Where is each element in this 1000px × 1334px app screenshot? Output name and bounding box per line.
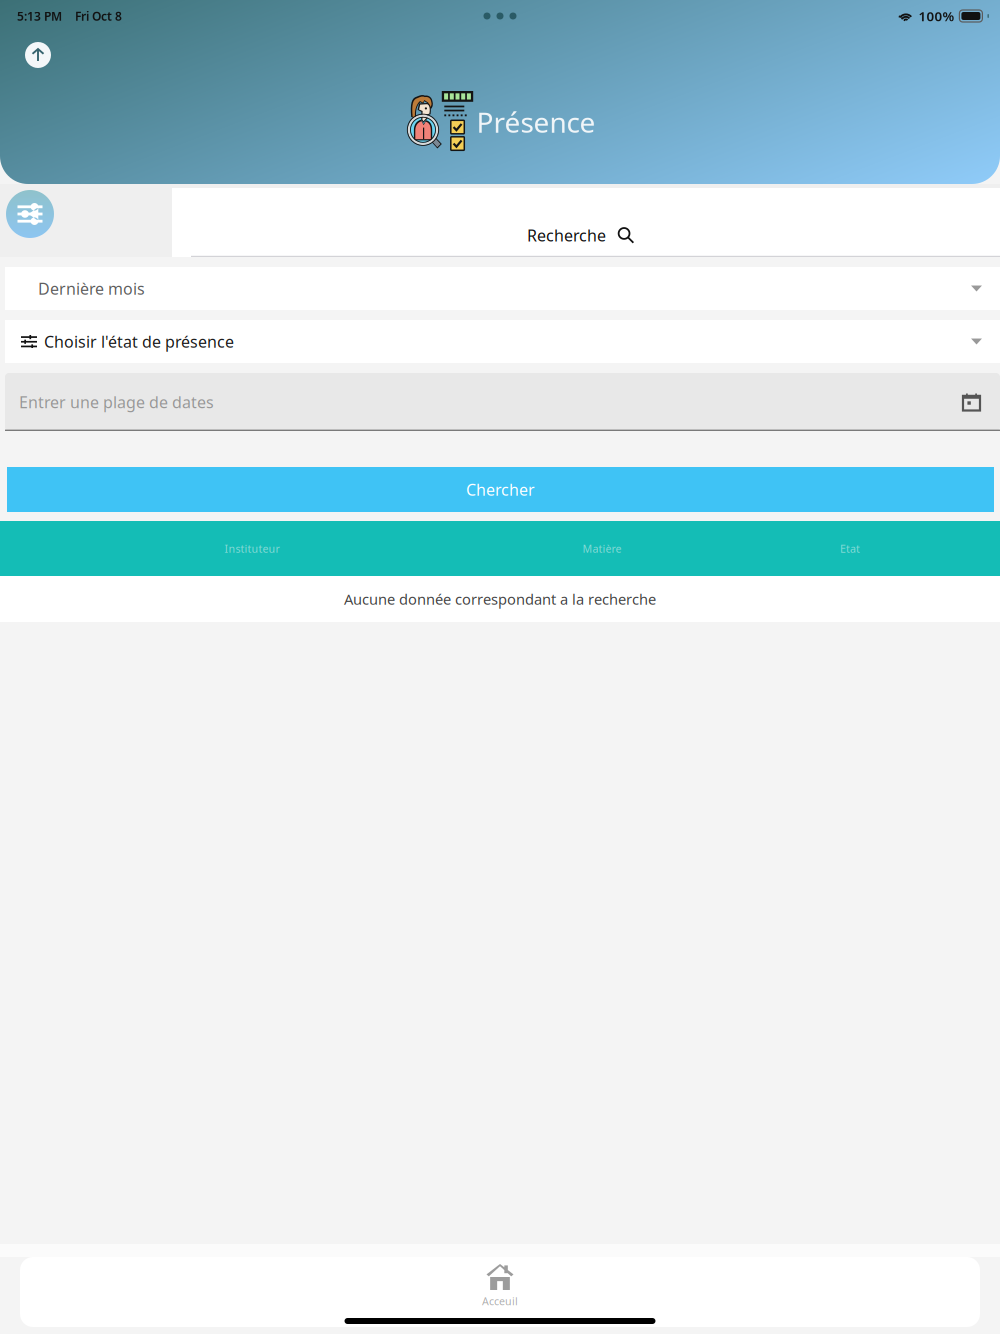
staticText: Instituteur: [224, 541, 279, 556]
button[interactable]: Choisir l'état de présence: [5, 320, 1000, 363]
button[interactable]: Back: [25, 42, 51, 68]
staticText: Etat: [840, 541, 860, 556]
staticText: Recherche: [527, 225, 606, 246]
staticText: Choisir l'état de présence: [44, 331, 234, 352]
staticText: 100%: [918, 7, 954, 25]
staticText: Chercher: [466, 479, 535, 500]
staticText: 5:13 PM: [17, 8, 62, 24]
staticText: Acceuil: [482, 1294, 518, 1308]
button[interactable]: Recherche: [172, 188, 1000, 257]
staticText: Aucune donnée correspondant a la recherc…: [344, 589, 656, 609]
staticText: Dernière mois: [38, 278, 145, 299]
button[interactable]: Acceuil: [20, 1257, 980, 1327]
staticText: Présence: [476, 103, 595, 141]
button[interactable]: Filters: [6, 190, 54, 238]
staticText: Fri Oct 8: [75, 8, 122, 24]
button[interactable]: Chercher: [7, 467, 994, 512]
button[interactable]: Dernière mois: [5, 267, 1000, 310]
staticText: Matière: [582, 541, 621, 556]
staticText: Entrer une plage de dates: [19, 391, 214, 413]
